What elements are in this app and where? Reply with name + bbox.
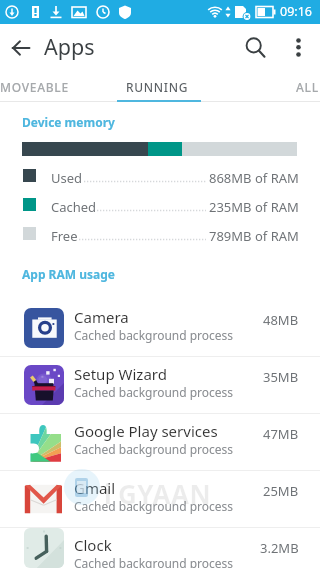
button[interactable]: Gmail [0, 471, 320, 528]
staticText: 09:16 [280, 3, 312, 20]
staticText: 47MB [263, 425, 299, 443]
button[interactable]: Search [230, 24, 276, 72]
staticText: Cached background process [74, 384, 234, 400]
staticText: 868MB of RAM [209, 169, 299, 183]
staticText: Google Play services [74, 421, 218, 441]
staticText: GYAAN [118, 476, 212, 511]
button[interactable]: Clock [0, 528, 320, 568]
staticText: 789MB of RAM [209, 227, 299, 241]
staticText: 25MB [263, 482, 299, 500]
staticText: Cached background process [74, 327, 234, 343]
staticText: Used [51, 169, 83, 183]
staticText: i [104, 476, 112, 511]
staticText: RUNNING [126, 79, 189, 95]
staticText: Clock [74, 535, 112, 555]
staticText: Camera [74, 307, 129, 327]
button[interactable]: Setup Wizard [0, 357, 320, 414]
staticText: App RAM usage [22, 266, 115, 282]
staticText: 235MB of RAM [209, 198, 299, 212]
button[interactable]: Camera [0, 300, 320, 357]
staticText: Device memory [22, 114, 115, 130]
staticText: Cached background process [74, 498, 234, 514]
staticText: Cached [51, 198, 97, 212]
staticText: MOVEABLE [0, 79, 69, 95]
staticText: Cached background process [74, 555, 234, 568]
staticText: Setup Wizard [74, 364, 167, 384]
staticText: Cached background process [74, 441, 234, 457]
staticText: ALL [296, 79, 319, 95]
button[interactable]: Back [0, 24, 42, 72]
staticText: Gmail [74, 478, 116, 498]
staticText: 3.2MB [260, 539, 299, 557]
staticText: Free [51, 227, 78, 241]
button[interactable]: Google Play services [0, 414, 320, 471]
staticText: 48MB [263, 311, 299, 329]
staticText: Apps [44, 32, 95, 61]
button[interactable]: More options [276, 24, 320, 72]
staticText: 35MB [263, 368, 299, 386]
